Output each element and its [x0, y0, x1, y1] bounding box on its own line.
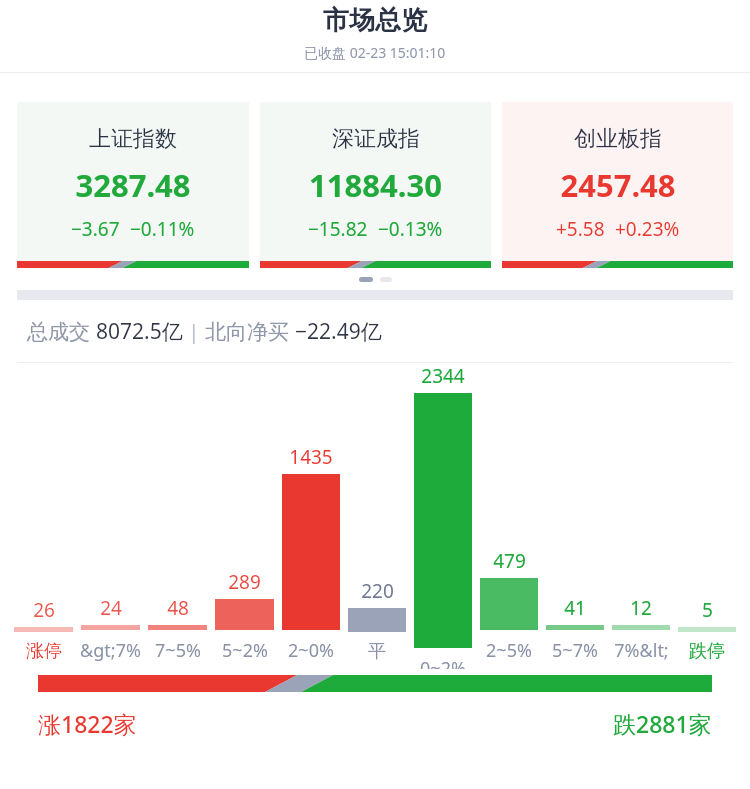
- staticText: 涨停: [26, 640, 62, 663]
- button[interactable]: 深证成指: [260, 102, 491, 268]
- button[interactable]: 2344: [410, 363, 476, 669]
- staticText: −15.82: [308, 216, 368, 242]
- staticText: 2457.48: [560, 164, 676, 206]
- staticText: 2~0%: [288, 638, 334, 663]
- staticText: 0~2%: [420, 656, 466, 669]
- staticText: 北向净买: [205, 317, 295, 346]
- staticText: 1435: [289, 444, 333, 470]
- staticText: +5.58: [556, 216, 605, 242]
- staticText: −0.11%: [130, 216, 195, 242]
- staticText: 涨1822家: [38, 708, 137, 739]
- button[interactable]: 41: [542, 363, 608, 669]
- staticText: 2344: [421, 363, 465, 389]
- staticText: −22.49亿: [295, 317, 382, 346]
- staticText: 平: [368, 640, 386, 663]
- staticText: 289: [228, 569, 261, 595]
- staticText: 跌停: [689, 640, 725, 663]
- button[interactable]: 5: [674, 363, 740, 669]
- staticText: 5: [702, 597, 713, 623]
- staticText: 创业板指: [574, 125, 662, 153]
- staticText: 深证成指: [332, 125, 420, 153]
- button[interactable]: 上证指数: [17, 102, 249, 268]
- staticText: 48: [167, 595, 189, 621]
- button[interactable]: 479: [476, 363, 542, 669]
- button[interactable]: [380, 277, 392, 282]
- staticText: 26: [33, 597, 55, 623]
- staticText: −3.67: [71, 216, 120, 242]
- staticText: 上证指数: [89, 125, 177, 153]
- staticText: 市场总览: [323, 4, 427, 37]
- staticText: 3287.48: [75, 164, 191, 206]
- staticText: 41: [564, 595, 586, 621]
- button[interactable]: [38, 675, 712, 692]
- staticText: 12: [630, 595, 652, 621]
- button[interactable]: 48: [144, 363, 211, 669]
- button[interactable]: 24: [77, 363, 144, 669]
- staticText: −0.13%: [378, 216, 443, 242]
- staticText: +0.23%: [615, 216, 680, 242]
- staticText: 7%&lt;: [614, 638, 669, 663]
- staticText: 220: [361, 578, 394, 604]
- staticText: 2~5%: [486, 638, 532, 663]
- staticText: 5~7%: [552, 638, 598, 663]
- staticText: 已收盘 02-23 15:01:10: [304, 43, 446, 62]
- button[interactable]: 26: [10, 363, 77, 669]
- staticText: &gt;7%: [80, 638, 141, 663]
- button[interactable]: [359, 277, 373, 282]
- staticText: 8072.5亿: [96, 317, 183, 346]
- button[interactable]: 289: [211, 363, 278, 669]
- button[interactable]: 1435: [278, 363, 344, 669]
- button[interactable]: 220: [344, 363, 410, 669]
- button[interactable]: 12: [608, 363, 674, 669]
- staticText: 总成交: [27, 317, 96, 346]
- staticText: |: [183, 318, 205, 345]
- staticText: 479: [493, 548, 526, 574]
- button[interactable]: 总成交: [0, 300, 750, 362]
- staticText: 11884.30: [309, 164, 442, 206]
- staticText: 7~5%: [155, 638, 201, 663]
- staticText: 跌2881家: [613, 708, 712, 739]
- staticText: 5~2%: [222, 638, 268, 663]
- staticText: 24: [100, 595, 122, 621]
- button[interactable]: 创业板指: [502, 102, 733, 268]
